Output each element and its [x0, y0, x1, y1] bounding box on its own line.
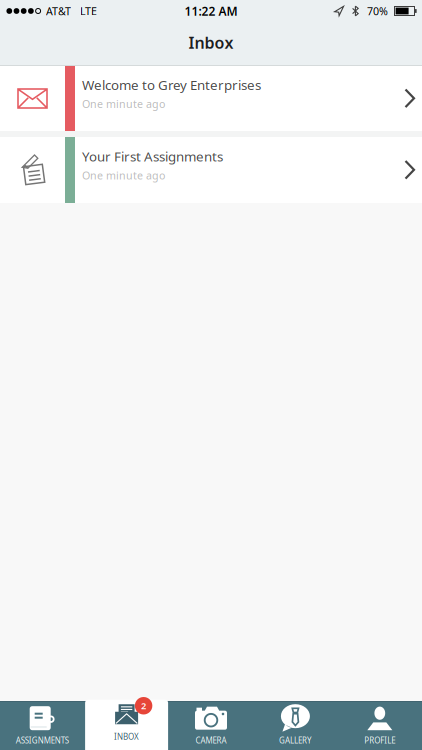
staticText: INBOX [114, 731, 139, 742]
button[interactable]: GALLERY [253, 701, 338, 750]
button[interactable]: ASSIGNMENTS [0, 701, 84, 750]
staticText: PROFILE [364, 735, 395, 746]
staticText: 2 [141, 700, 146, 712]
button[interactable]: 2 [84, 701, 169, 750]
button[interactable]: Welcome to Grey Enterprises [0, 66, 422, 131]
staticText: Welcome to Grey Enterprises [82, 76, 261, 94]
staticText: Your First Assignments [82, 148, 223, 165]
staticText: One minute ago [82, 97, 165, 111]
staticText: AT&T [46, 4, 71, 18]
button[interactable]: CAMERA [169, 701, 253, 750]
staticText: One minute ago [82, 168, 165, 182]
button[interactable]: Your First Assignments [0, 137, 422, 203]
staticText: 11:22 AM [184, 3, 237, 19]
staticText: GALLERY [279, 735, 312, 746]
staticText: LTE [80, 4, 97, 18]
staticText: 70% [367, 4, 388, 18]
button[interactable]: PROFILE [338, 701, 422, 750]
staticText: Inbox [188, 32, 233, 53]
staticText: CAMERA [195, 735, 226, 746]
staticText: ASSIGNMENTS [16, 735, 69, 746]
